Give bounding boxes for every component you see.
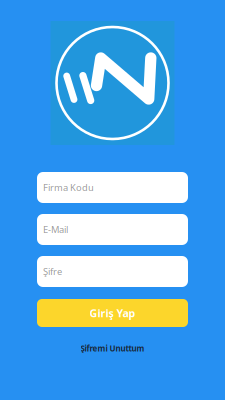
staticText: Şifremi Unuttum — [80, 343, 144, 354]
staticText: Giriş Yap — [89, 306, 135, 320]
button[interactable]: Şifremi Unuttum — [68, 339, 156, 358]
staticText: E-Mail — [43, 223, 68, 236]
staticText: Firma Kodu — [43, 181, 94, 194]
button[interactable]: Giriş Yap — [37, 299, 188, 327]
staticText: Şifre — [43, 265, 62, 278]
